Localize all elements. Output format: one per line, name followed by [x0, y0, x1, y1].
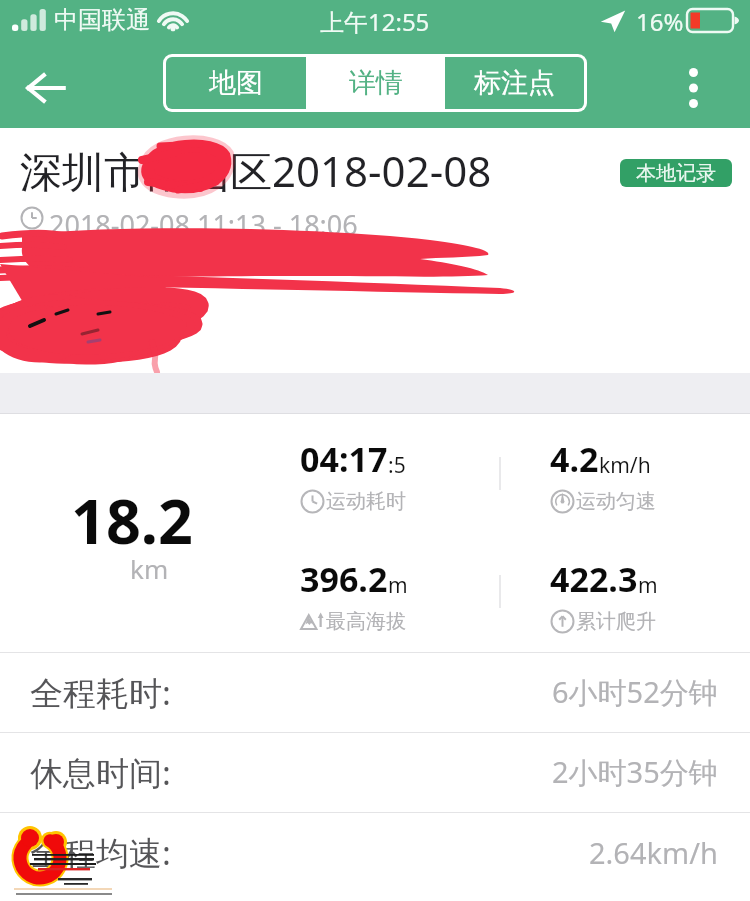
- staticText: m: [638, 571, 658, 600]
- staticText: 全程均速:: [30, 830, 171, 875]
- button[interactable]: 休息时间:: [0, 732, 750, 812]
- staticText: 396.2: [300, 556, 388, 602]
- staticText: 422.3: [550, 556, 638, 602]
- button[interactable]: 详情: [306, 57, 445, 109]
- staticText: km/h: [599, 451, 651, 480]
- staticText: 运动耗时: [326, 489, 406, 514]
- button[interactable]: 地图: [166, 57, 306, 109]
- staticText: 本地记录: [636, 161, 716, 186]
- staticText: 16%: [636, 5, 684, 38]
- staticText: 全程耗时:: [30, 670, 171, 715]
- staticText: 2018-02-08 11:13 - 18:06: [49, 206, 358, 243]
- staticText: 2小时35分钟: [552, 752, 718, 792]
- staticText: 地图: [209, 66, 263, 100]
- button[interactable]: 全程均速:: [0, 812, 750, 892]
- staticText: 累计爬升: [576, 609, 656, 634]
- staticText: 18.2: [71, 479, 193, 562]
- staticText: 04:17: [300, 436, 388, 482]
- staticText: 2.64km/h: [589, 833, 718, 872]
- staticText: 最高海拔: [326, 609, 406, 634]
- staticText: 深圳市南山区2018-02-08: [20, 142, 492, 199]
- staticText: 详情: [349, 66, 403, 100]
- button[interactable]: More options: [662, 57, 724, 119]
- staticText: 6小时52分钟: [552, 672, 718, 712]
- staticText: km: [130, 551, 169, 586]
- staticText: 运动匀速: [576, 489, 656, 514]
- staticText: m: [388, 571, 408, 600]
- staticText: 休息时间:: [30, 750, 171, 795]
- button[interactable]: Back: [12, 59, 82, 117]
- staticText: 中国联通: [54, 5, 150, 35]
- staticText: :5: [388, 451, 406, 480]
- button[interactable]: 标注点: [445, 57, 584, 109]
- staticText: 标注点: [474, 66, 555, 100]
- button[interactable]: 全程耗时:: [0, 652, 750, 732]
- staticText: 上午12:55: [320, 5, 430, 38]
- staticText: 4.2: [550, 436, 599, 482]
